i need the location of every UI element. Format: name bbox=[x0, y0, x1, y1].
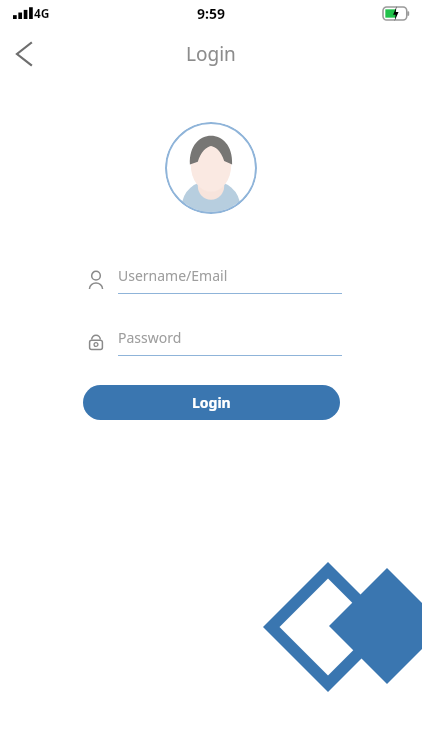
staticText: 4G bbox=[34, 5, 50, 21]
button[interactable]: Username/Email bbox=[88, 266, 342, 294]
button[interactable]: Back bbox=[0, 30, 48, 78]
button[interactable]: Password bbox=[88, 328, 342, 356]
staticText: 9:59 bbox=[197, 4, 225, 23]
staticText: Password bbox=[118, 328, 182, 347]
button[interactable]: Profile picture bbox=[165, 122, 257, 214]
staticText: Login bbox=[192, 393, 231, 412]
staticText: Login bbox=[186, 41, 236, 67]
button[interactable]: Login bbox=[83, 385, 340, 420]
staticText: Username/Email bbox=[118, 266, 228, 285]
